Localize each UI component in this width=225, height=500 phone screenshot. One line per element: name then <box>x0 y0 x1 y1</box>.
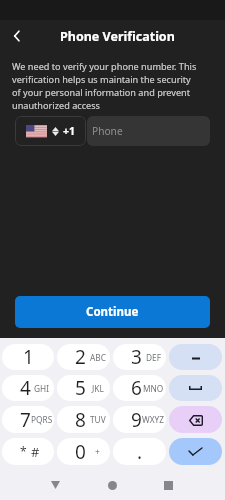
staticText: Phone Verification <box>60 28 175 45</box>
staticText: 4 <box>20 375 31 401</box>
button[interactable]: Space <box>169 375 222 401</box>
button[interactable]: Back <box>42 472 68 498</box>
staticText: * <box>20 443 27 459</box>
button[interactable]: 3 <box>113 344 166 370</box>
button[interactable]: Enter <box>169 438 222 465</box>
button[interactable]: * <box>2 438 54 465</box>
staticText: 3 <box>131 344 142 370</box>
button[interactable]: 2 <box>57 344 110 370</box>
button[interactable]: Continue <box>15 296 210 328</box>
button[interactable]: 5 <box>57 375 110 401</box>
button[interactable]: 4 <box>2 375 54 401</box>
staticText: TUV <box>90 414 106 425</box>
staticText: 1 <box>23 344 34 370</box>
button[interactable]: +1 <box>15 116 86 146</box>
button[interactable]: 9 <box>113 406 166 433</box>
staticText: ABC <box>90 352 106 363</box>
staticText: 7 <box>20 407 31 433</box>
staticText: MNO <box>143 383 164 394</box>
staticText: JKL <box>92 383 104 394</box>
staticText: 5 <box>75 375 86 401</box>
staticText: GHI <box>34 383 50 394</box>
button[interactable]: . <box>113 438 166 465</box>
staticText: WXYZ <box>142 414 165 425</box>
button[interactable]: Home <box>99 472 125 498</box>
button[interactable]: 0 <box>57 438 110 465</box>
staticText: + <box>95 446 100 457</box>
button[interactable]: 8 <box>57 406 110 433</box>
staticText: # <box>31 443 40 461</box>
button[interactable]: 1 <box>2 344 54 370</box>
staticText: Continue <box>86 304 139 320</box>
button[interactable]: Backspace <box>169 406 222 433</box>
staticText: Phone <box>92 124 123 138</box>
staticText: 8 <box>75 407 86 433</box>
staticText: PQRS <box>31 414 53 425</box>
button[interactable]: Recents <box>155 472 181 498</box>
button[interactable]: 6 <box>113 375 166 401</box>
button[interactable]: Back <box>1 20 33 52</box>
staticText: +1 <box>63 124 74 138</box>
staticText: 0 <box>75 439 86 465</box>
staticText: 2 <box>75 344 86 370</box>
button[interactable]: Phone <box>87 116 210 146</box>
staticText: . <box>137 439 143 465</box>
staticText: 6 <box>131 375 142 401</box>
staticText: 9 <box>131 407 142 433</box>
staticText: We need to verify your phone number. Thi… <box>12 60 199 112</box>
staticText: DEF <box>146 352 161 363</box>
button[interactable]: 7 <box>2 406 54 433</box>
button[interactable]: Dash <box>169 344 222 370</box>
